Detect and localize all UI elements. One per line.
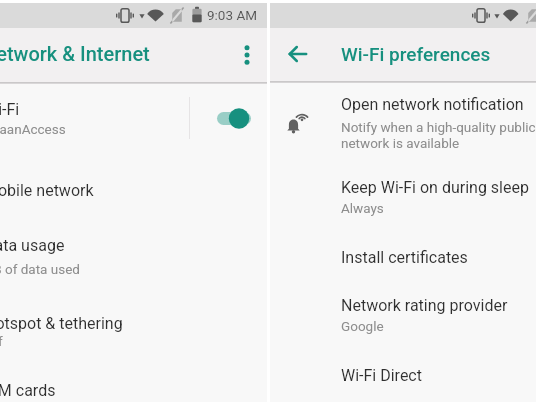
button[interactable]: More options — [233, 41, 261, 69]
staticText: Open network notification — [341, 95, 524, 114]
staticText: Wi-Fi — [0, 100, 20, 119]
staticText: Always — [341, 200, 384, 216]
staticText: Google — [341, 318, 384, 334]
staticText: SIM cards — [0, 381, 56, 400]
staticText: Wi-Fi Direct — [341, 366, 422, 385]
staticText: Network rating provider — [341, 296, 508, 315]
staticText: network is available — [341, 135, 460, 151]
staticText: Install certificates — [341, 248, 468, 267]
staticText: Off — [0, 333, 3, 349]
staticText: GyaanAccess — [0, 121, 66, 137]
staticText: Hotspot & tethering — [0, 314, 123, 333]
button[interactable]: Back — [284, 40, 312, 68]
button[interactable]: Wi-Fi on — [205, 99, 263, 139]
staticText: Network & Internet — [0, 42, 150, 65]
staticText: Data usage — [0, 236, 65, 255]
staticText: Mobile network — [0, 181, 94, 200]
staticText: Notify when a high-quality public — [341, 119, 536, 135]
staticText: Wi-Fi preferences — [341, 43, 491, 65]
staticText: Keep Wi-Fi on during sleep — [341, 178, 529, 197]
staticText: 9:03 AM — [207, 7, 257, 23]
staticText: GB of data used — [0, 261, 80, 277]
